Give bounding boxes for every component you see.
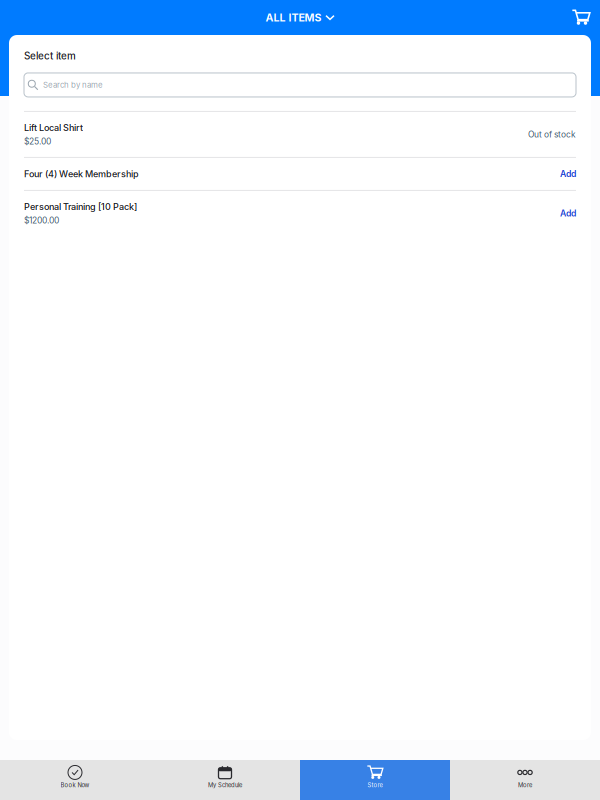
button[interactable]: Cart (562, 0, 600, 35)
staticText: Add (560, 169, 576, 179)
staticText: $25.00 (24, 136, 51, 147)
staticText: $1200.00 (24, 215, 59, 226)
staticText: Select item (24, 50, 76, 62)
staticText: Add (560, 208, 576, 219)
staticText: Four (4) Week Membership (24, 168, 139, 179)
staticText: Lift Local Shirt (24, 122, 83, 133)
button[interactable]: Personal Training [10 Pack] (9, 191, 591, 236)
staticText: Personal Training [10 Pack] (24, 201, 137, 212)
button[interactable]: More (450, 760, 600, 800)
staticText: Search by name (43, 80, 103, 90)
button[interactable]: Lift Local Shirt (9, 112, 591, 157)
button[interactable]: Store (300, 760, 450, 800)
staticText: Store (367, 781, 382, 789)
staticText: ALL ITEMS (265, 11, 321, 24)
button[interactable]: My Schedule (150, 760, 300, 800)
staticText: Book Now (60, 781, 89, 789)
staticText: Out of stock (528, 129, 576, 140)
button[interactable]: Four (4) Week Membership (9, 158, 591, 190)
staticText: More (518, 781, 532, 789)
button[interactable]: Book Now (0, 760, 150, 800)
staticText: My Schedule (208, 781, 242, 789)
